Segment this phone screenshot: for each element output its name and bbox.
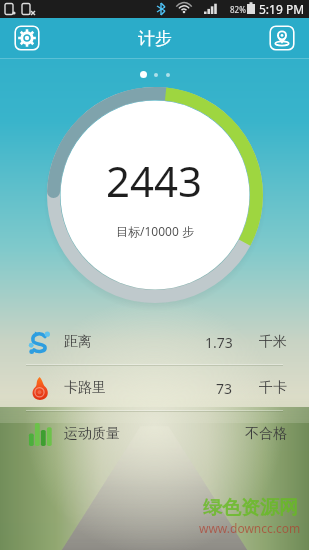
button[interactable]: 运动质量: [22, 412, 287, 456]
button[interactable]: Location: [269, 25, 295, 51]
staticText: 1.73: [205, 333, 233, 352]
staticText: 千米: [259, 333, 287, 351]
button[interactable]: 距离: [22, 320, 287, 364]
staticText: 82%: [230, 4, 246, 15]
staticText: 5:19 PM: [259, 1, 305, 17]
staticText: 距离: [64, 333, 92, 351]
staticText: 运动质量: [64, 425, 120, 443]
staticText: 千卡: [259, 379, 287, 397]
staticText: 卡路里: [64, 379, 106, 397]
staticText: 73: [216, 379, 233, 398]
staticText: 绿色资源网: [203, 496, 298, 520]
button[interactable]: Settings: [14, 25, 40, 51]
button[interactable]: 卡路里: [22, 366, 287, 410]
staticText: 目标/10000 步: [116, 223, 194, 239]
staticText: 计步: [138, 28, 172, 49]
staticText: 不合格: [245, 425, 287, 443]
staticText: www.downcc.com: [199, 520, 301, 536]
staticText: 2443: [106, 152, 203, 209]
